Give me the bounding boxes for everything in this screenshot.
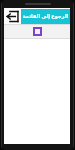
staticText: الرجوع إلى القائمة الرئيسية (21, 13, 70, 20)
button[interactable]: Placeholder image (33, 27, 42, 36)
button[interactable]: الرجوع إلى القائمة الرئيسية (21, 9, 70, 24)
button[interactable]: Back to main menu (4, 8, 21, 24)
